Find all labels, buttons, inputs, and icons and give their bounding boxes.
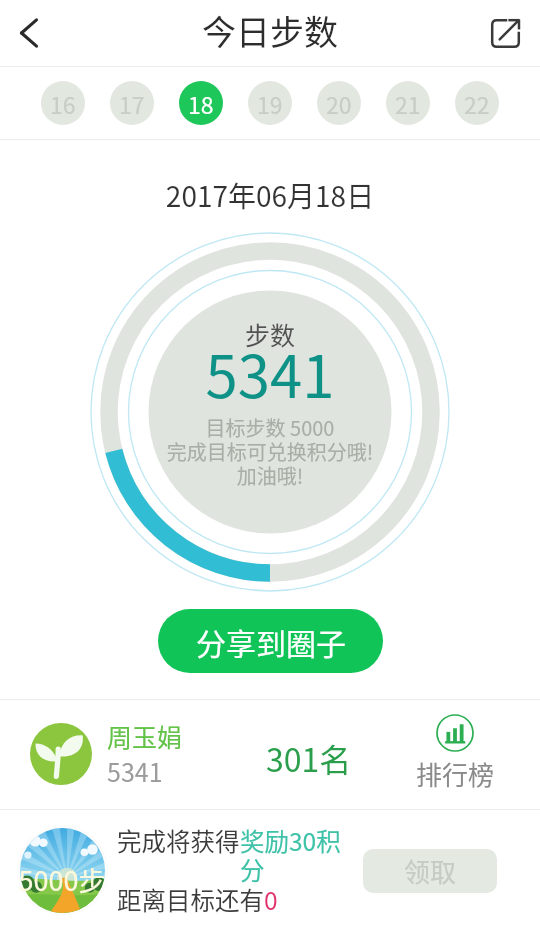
staticText: 奖励30积分 — [240, 823, 344, 887]
button[interactable]: Share — [478, 0, 540, 66]
button[interactable]: 18 — [179, 81, 223, 125]
button[interactable]: 领取 — [363, 849, 497, 893]
staticText: 2017年06月18日 — [0, 175, 540, 216]
staticText: 18 — [188, 87, 214, 120]
button[interactable]: 17 — [110, 81, 154, 125]
staticText: 距离目标还有0 — [117, 882, 278, 917]
staticText: 20 — [326, 87, 352, 120]
staticText: 301名 — [266, 735, 352, 781]
staticText: 目标步数 5000 完成目标可兑换积分哦! 加油哦! — [0, 413, 540, 490]
staticText: 完成将获得 — [117, 823, 240, 858]
staticText: 19 — [257, 87, 283, 120]
button[interactable]: Back — [0, 0, 62, 66]
staticText: 22 — [464, 87, 490, 120]
staticText: 周玉娟 — [107, 718, 183, 754]
staticText: 16 — [50, 87, 76, 120]
button[interactable]: 排行榜 — [400, 714, 510, 804]
staticText: 步数 — [0, 316, 540, 352]
staticText: 5000步 — [8, 860, 116, 899]
button[interactable]: 分享到圈子 — [158, 609, 383, 673]
staticText: 领取 — [404, 852, 457, 890]
staticText: 5341 — [0, 331, 540, 415]
button[interactable]: 19 — [248, 81, 292, 125]
staticText: 分享到圈子 — [196, 620, 346, 663]
button[interactable]: 16 — [41, 81, 85, 125]
staticText: 21 — [395, 87, 421, 120]
staticText: 今日步数 — [202, 6, 338, 55]
staticText: 5341 — [107, 753, 163, 789]
button[interactable]: 20 — [317, 81, 361, 125]
button[interactable]: 22 — [455, 81, 499, 125]
staticText: 17 — [119, 87, 145, 120]
staticText: 排行榜 — [416, 755, 495, 793]
button[interactable]: 21 — [386, 81, 430, 125]
